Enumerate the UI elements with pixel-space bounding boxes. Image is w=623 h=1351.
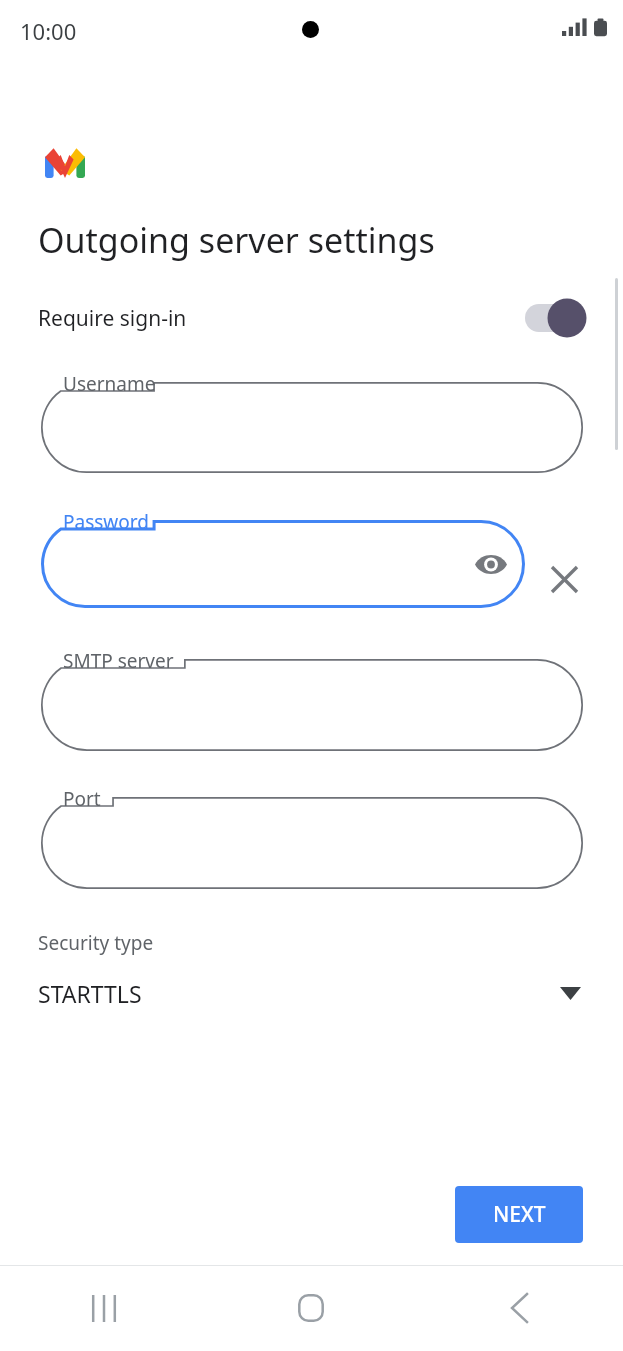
staticText: Require sign-in <box>38 304 187 333</box>
staticText: 10:00 <box>20 16 77 46</box>
button[interactable]: Recent apps <box>0 1265 207 1351</box>
staticText: Outgoing server settings <box>38 217 435 263</box>
button[interactable]: NEXT <box>455 1186 583 1243</box>
staticText: NEXT <box>493 1200 546 1229</box>
button[interactable]: Username <box>41 382 583 473</box>
staticText: Security type <box>38 930 154 956</box>
button[interactable]: SMTP server <box>41 659 583 751</box>
staticText: Username <box>63 371 156 397</box>
staticText: SMTP server <box>63 648 174 674</box>
button[interactable]: Show password <box>469 542 513 586</box>
button[interactable]: Clear password <box>540 555 588 603</box>
button[interactable]: Port <box>41 797 583 889</box>
button[interactable]: Back <box>415 1265 623 1351</box>
staticText: STARTTLS <box>38 978 142 1009</box>
button[interactable]: Password <box>41 520 525 608</box>
button[interactable]: Require sign-in <box>0 292 623 344</box>
staticText: Password <box>63 509 149 535</box>
staticText: Port <box>63 786 101 812</box>
button[interactable]: STARTTLS <box>0 962 623 1024</box>
button[interactable]: Home <box>207 1265 415 1351</box>
button[interactable]: Require sign-in toggle <box>525 296 587 340</box>
